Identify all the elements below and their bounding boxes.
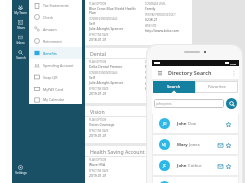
staticText: Julie Albright-Spencer — [89, 80, 124, 85]
button[interactable]: john jones — [154, 99, 224, 108]
button[interactable]: Snap QR — [29, 71, 82, 83]
button[interactable]: Favorites — [195, 81, 238, 93]
staticText: 12:30 — [230, 62, 237, 65]
button[interactable]: Spending Account — [29, 59, 82, 71]
button[interactable]: My Team — [12, 2, 29, 17]
button[interactable]: Search — [12, 47, 29, 62]
button[interactable]: Inbox — [12, 32, 29, 47]
staticText: My Calendar — [43, 97, 65, 102]
staticText: Retirement — [43, 39, 62, 44]
button[interactable]: JC — [153, 156, 238, 175]
staticText: JC — [163, 163, 167, 168]
staticText: PER PAY PERIOD DEDUCT — [145, 13, 176, 17]
staticText: EFFECTIVE DATE — [89, 129, 109, 133]
staticText: PLAN OPTION — [89, 158, 107, 162]
button[interactable]: Benefits — [29, 47, 82, 59]
staticText: John — [177, 163, 187, 169]
staticText: Favorites — [208, 84, 226, 90]
staticText: Settings — [15, 171, 27, 175]
staticText: 2019-01-01 — [89, 173, 107, 178]
staticText: Delta Dental Premier — [89, 64, 123, 69]
staticText: COVERAGE LEVEL — [145, 2, 166, 6]
staticText: $24.10 — [145, 75, 156, 80]
staticText: Wave HSA — [89, 162, 106, 167]
button[interactable]: More options — [230, 69, 237, 76]
staticText: 2019-01-01 — [89, 91, 107, 96]
staticText: Family — [145, 6, 156, 11]
staticText: Snap QR — [43, 75, 58, 80]
staticText: Mary — [177, 142, 189, 148]
staticText: COVERED INDIVIDUALS — [89, 71, 118, 75]
button[interactable]: My Calendar — [29, 95, 82, 104]
button[interactable]: Tax Statements — [29, 0, 82, 11]
button[interactable]: Settings — [12, 162, 29, 177]
button[interactable]: Retirement — [29, 35, 82, 47]
staticText: Vision Coverage — [89, 122, 115, 127]
button[interactable]: Search — [226, 98, 237, 109]
staticText: Julie Albright-Spencer — [89, 26, 124, 31]
button[interactable]: Favorite — [225, 163, 231, 169]
button[interactable]: Menu — [156, 69, 163, 76]
staticText: Inbox — [16, 41, 25, 45]
staticText: EFFECTIVE DATE — [89, 87, 109, 91]
staticText: PER PAY PERIOD DEDUCT — [145, 71, 176, 75]
staticText: Vision — [90, 108, 105, 115]
staticText: COVERAGE LEVEL — [145, 60, 166, 64]
button[interactable]: Search — [153, 81, 195, 93]
staticText: My Team — [14, 11, 27, 15]
staticText: Dental — [90, 50, 107, 57]
staticText: COVERED INDIVIDUALS — [89, 17, 118, 21]
staticText: Tax Statements — [43, 3, 69, 8]
button[interactable]: Favorite — [225, 121, 231, 127]
button[interactable]: MJ — [153, 135, 238, 154]
staticText: Check — [43, 15, 54, 20]
staticText: http://www.delta.com — [145, 86, 180, 91]
button[interactable]: LS — [153, 177, 238, 183]
staticText: MyPAY Card — [43, 87, 64, 92]
staticText: EFFECTIVE DATE — [89, 33, 109, 37]
staticText: PLAN OPTION — [89, 60, 107, 64]
staticText: Blue Cross Blue Shield Health Plan — [89, 6, 136, 15]
button[interactable]: Email — [217, 163, 223, 169]
staticText: Directory Search — [168, 69, 212, 76]
button[interactable]: MyPAY Card — [29, 83, 82, 95]
staticText: EFFECTIVE DATE — [89, 169, 109, 173]
button[interactable]: News — [12, 17, 29, 32]
staticText: Doe — [187, 121, 197, 127]
button[interactable]: Favorite — [225, 142, 231, 148]
staticText: Self — [89, 21, 95, 26]
staticText: Self — [89, 75, 95, 80]
staticText: News — [17, 26, 25, 30]
staticText: JD — [163, 121, 167, 126]
staticText: Cothur — [187, 163, 202, 169]
staticText: 2018-01-01 — [89, 37, 107, 42]
button[interactable]: Email — [217, 142, 223, 148]
staticText: Search — [16, 56, 26, 60]
staticText: http://www.bcbs.com — [145, 28, 180, 33]
staticText: John — [177, 121, 187, 127]
staticText: WEB SITE — [145, 82, 157, 86]
staticText: Health Saving Account — [90, 148, 145, 155]
staticText: $238.21 — [145, 17, 158, 22]
staticText: PLAN OPTION — [89, 118, 107, 122]
staticText: WEB SITE — [145, 24, 157, 28]
staticText: Jones — [189, 142, 200, 148]
staticText: PLAN OPTION — [89, 2, 107, 6]
staticText: MJ — [162, 142, 167, 147]
staticText: Search — [167, 84, 181, 90]
staticText: 2019-01-01 — [89, 133, 107, 138]
staticText: Benefits — [43, 51, 57, 56]
button[interactable]: Check — [29, 11, 82, 23]
staticText: john jones — [156, 102, 172, 106]
button[interactable]: Amazon — [29, 23, 82, 35]
staticText: Spending Account — [43, 63, 74, 68]
staticText: Family — [145, 64, 156, 69]
button[interactable]: JD — [153, 114, 238, 133]
staticText: Amazon — [43, 27, 57, 32]
